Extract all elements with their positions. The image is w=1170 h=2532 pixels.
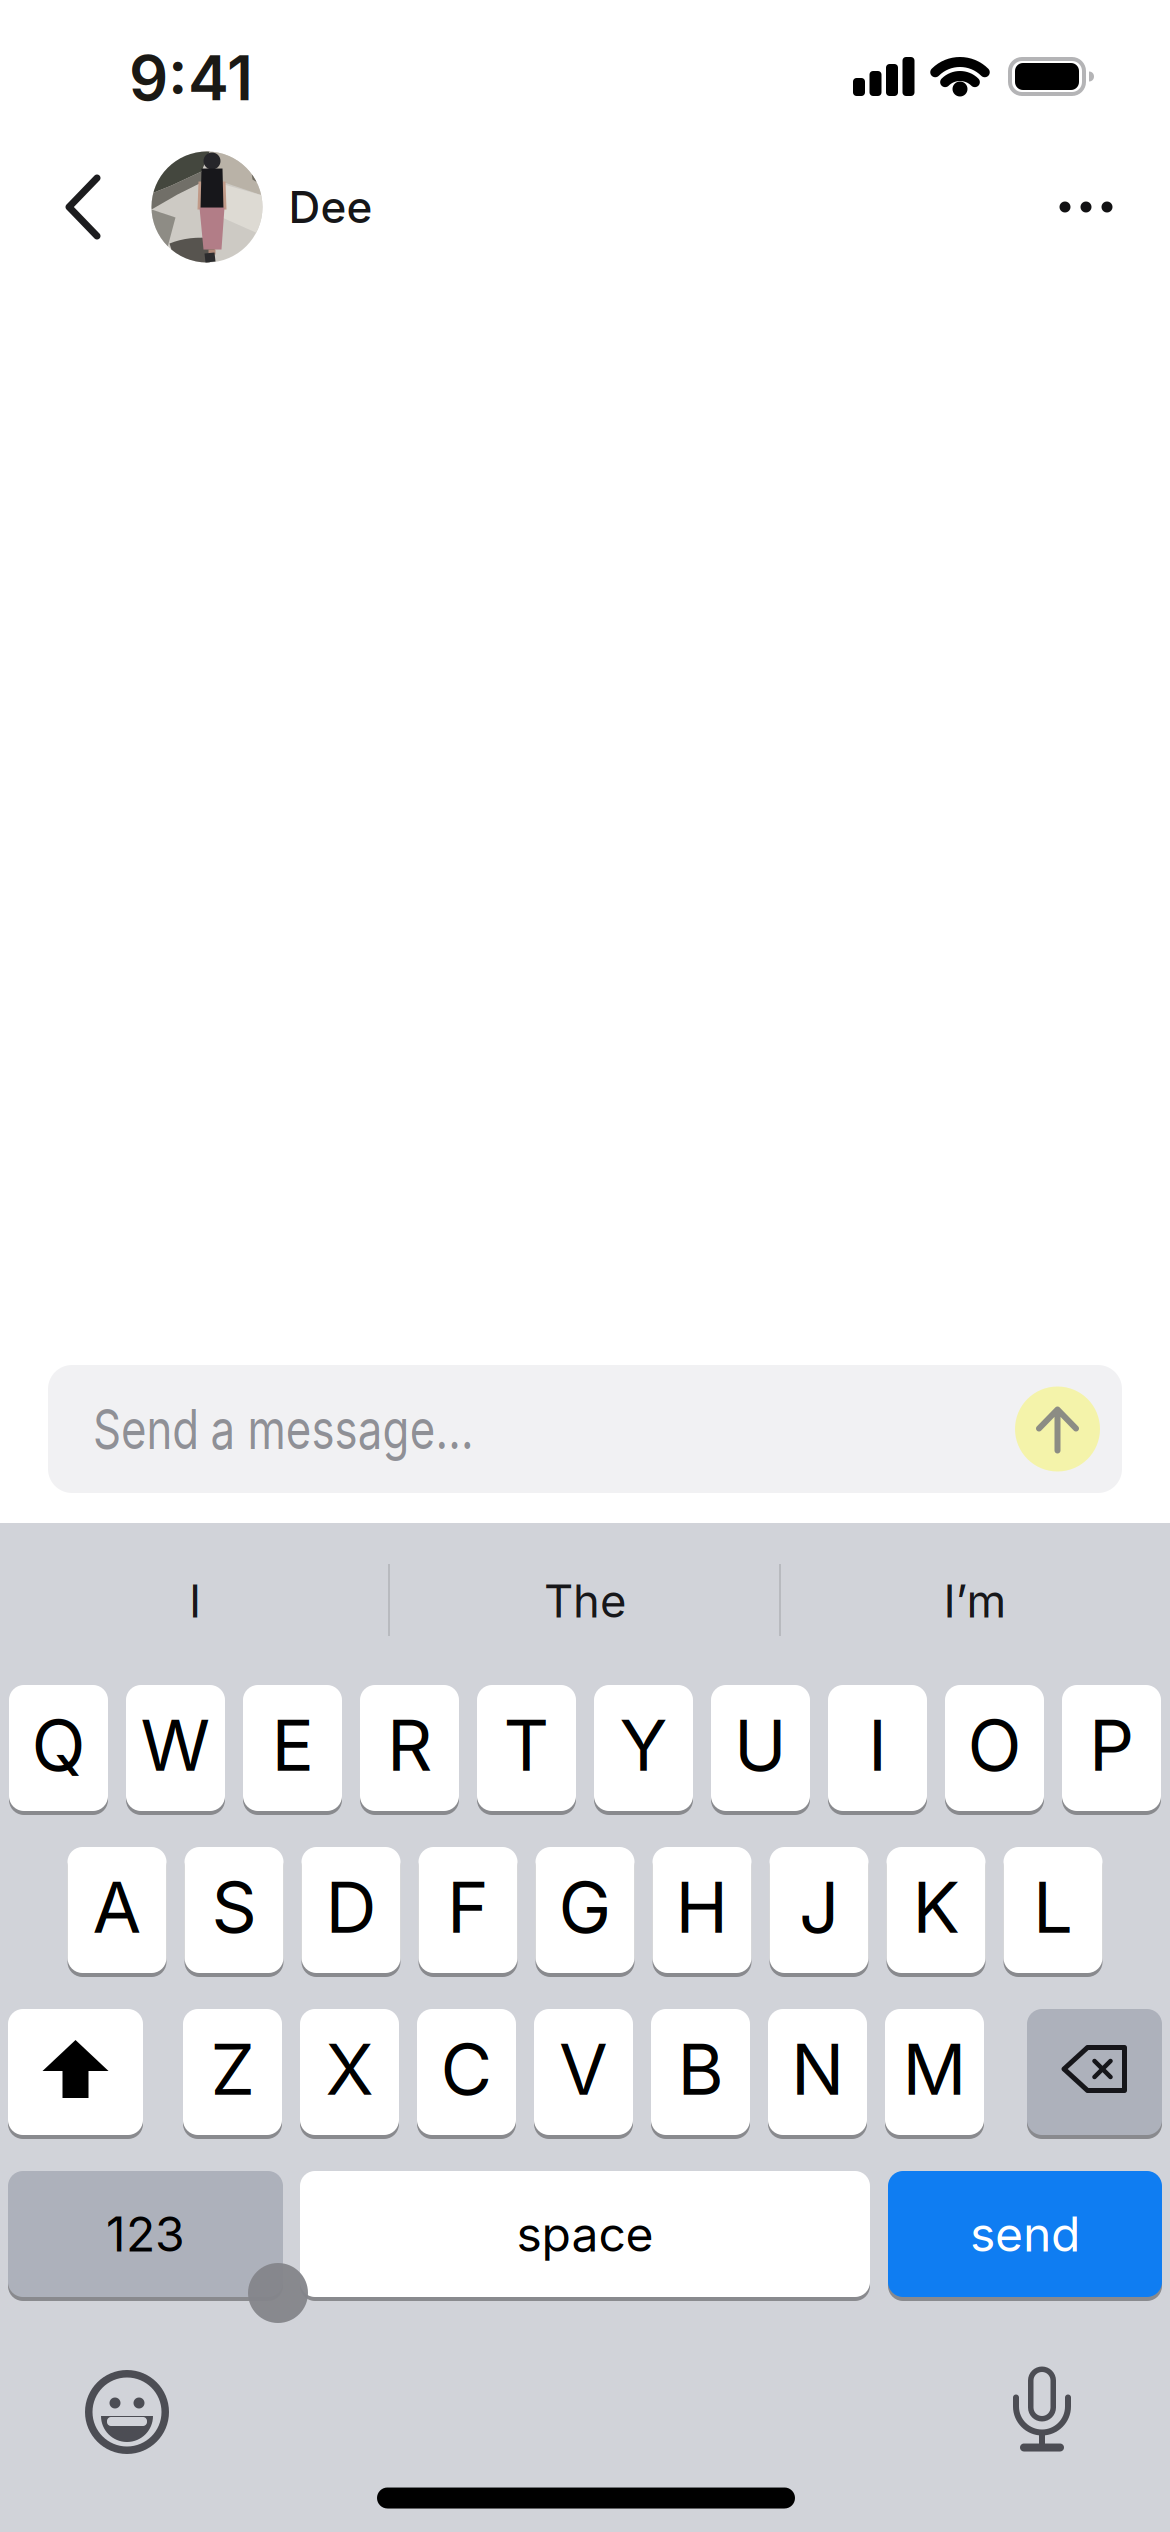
- button[interactable]: C: [417, 2007, 516, 2137]
- staticText: 9:41: [129, 42, 253, 114]
- staticText: W: [140, 1703, 210, 1787]
- button[interactable]: Delete: [1027, 2007, 1162, 2137]
- staticText: The: [544, 1574, 626, 1628]
- staticText: N: [791, 2027, 844, 2111]
- staticText: Dee: [288, 181, 372, 233]
- staticText: L: [1033, 1865, 1073, 1949]
- button[interactable]: Y: [594, 1683, 693, 1813]
- button[interactable]: F: [418, 1845, 517, 1975]
- staticText: Send a message...: [93, 1397, 569, 1461]
- button[interactable]: I: [10, 1546, 380, 1656]
- staticText: I: [189, 1574, 201, 1628]
- staticText: P: [1089, 1703, 1134, 1787]
- button[interactable]: Dee profile: [151, 151, 372, 262]
- staticText: Y: [619, 1703, 667, 1787]
- button[interactable]: B: [651, 2007, 750, 2137]
- button[interactable]: N: [768, 2007, 867, 2137]
- staticText: F: [447, 1865, 489, 1949]
- button[interactable]: O: [945, 1683, 1044, 1813]
- button[interactable]: T: [477, 1683, 576, 1813]
- button[interactable]: I: [828, 1683, 927, 1813]
- staticText: D: [325, 1865, 376, 1949]
- button[interactable]: H: [652, 1845, 751, 1975]
- staticText: I’m: [943, 1574, 1006, 1628]
- button[interactable]: 123: [8, 2169, 283, 2299]
- staticText: M: [902, 2027, 966, 2111]
- staticText: Q: [31, 1703, 85, 1787]
- button[interactable]: Shift: [8, 2007, 143, 2137]
- staticText: V: [559, 2027, 608, 2111]
- button[interactable]: Q: [9, 1683, 108, 1813]
- button[interactable]: M: [885, 2007, 984, 2137]
- button[interactable]: V: [534, 2007, 633, 2137]
- staticText: S: [211, 1865, 256, 1949]
- staticText: H: [675, 1865, 728, 1949]
- button[interactable]: G: [535, 1845, 634, 1975]
- button[interactable]: W: [126, 1683, 225, 1813]
- button[interactable]: Back: [63, 177, 103, 237]
- staticText: O: [967, 1703, 1021, 1787]
- button[interactable]: J: [769, 1845, 868, 1975]
- staticText: K: [912, 1865, 959, 1949]
- staticText: send: [970, 2206, 1080, 2262]
- staticText: G: [558, 1865, 611, 1949]
- button[interactable]: A: [67, 1845, 166, 1975]
- button[interactable]: Send a message: [48, 1365, 1122, 1493]
- button[interactable]: L: [1003, 1845, 1102, 1975]
- button[interactable]: I’m: [790, 1546, 1160, 1656]
- button[interactable]: send: [888, 2169, 1162, 2299]
- staticText: space: [516, 2206, 653, 2262]
- staticText: Z: [210, 2027, 254, 2111]
- staticText: U: [734, 1703, 787, 1787]
- button[interactable]: Z: [183, 2007, 282, 2137]
- staticText: C: [440, 2027, 492, 2111]
- staticText: T: [503, 1703, 549, 1787]
- button[interactable]: P: [1062, 1683, 1161, 1813]
- button[interactable]: U: [711, 1683, 810, 1813]
- button[interactable]: X: [300, 2007, 399, 2137]
- staticText: B: [677, 2027, 723, 2111]
- staticText: A: [92, 1865, 141, 1949]
- button[interactable]: S: [184, 1845, 283, 1975]
- button[interactable]: The: [400, 1546, 770, 1656]
- staticText: 123: [106, 2206, 185, 2262]
- button[interactable]: K: [886, 1845, 985, 1975]
- staticText: J: [799, 1865, 839, 1949]
- button[interactable]: R: [360, 1683, 459, 1813]
- button[interactable]: E: [243, 1683, 342, 1813]
- button[interactable]: Dictation: [1000, 2366, 1084, 2451]
- button[interactable]: Emoji: [85, 2370, 169, 2454]
- staticText: I: [868, 1703, 887, 1787]
- staticText: R: [387, 1703, 432, 1787]
- button[interactable]: D: [301, 1845, 400, 1975]
- button[interactable]: More options: [1059, 201, 1113, 213]
- staticText: X: [325, 2027, 373, 2111]
- staticText: E: [271, 1703, 313, 1787]
- button[interactable]: space: [300, 2169, 870, 2299]
